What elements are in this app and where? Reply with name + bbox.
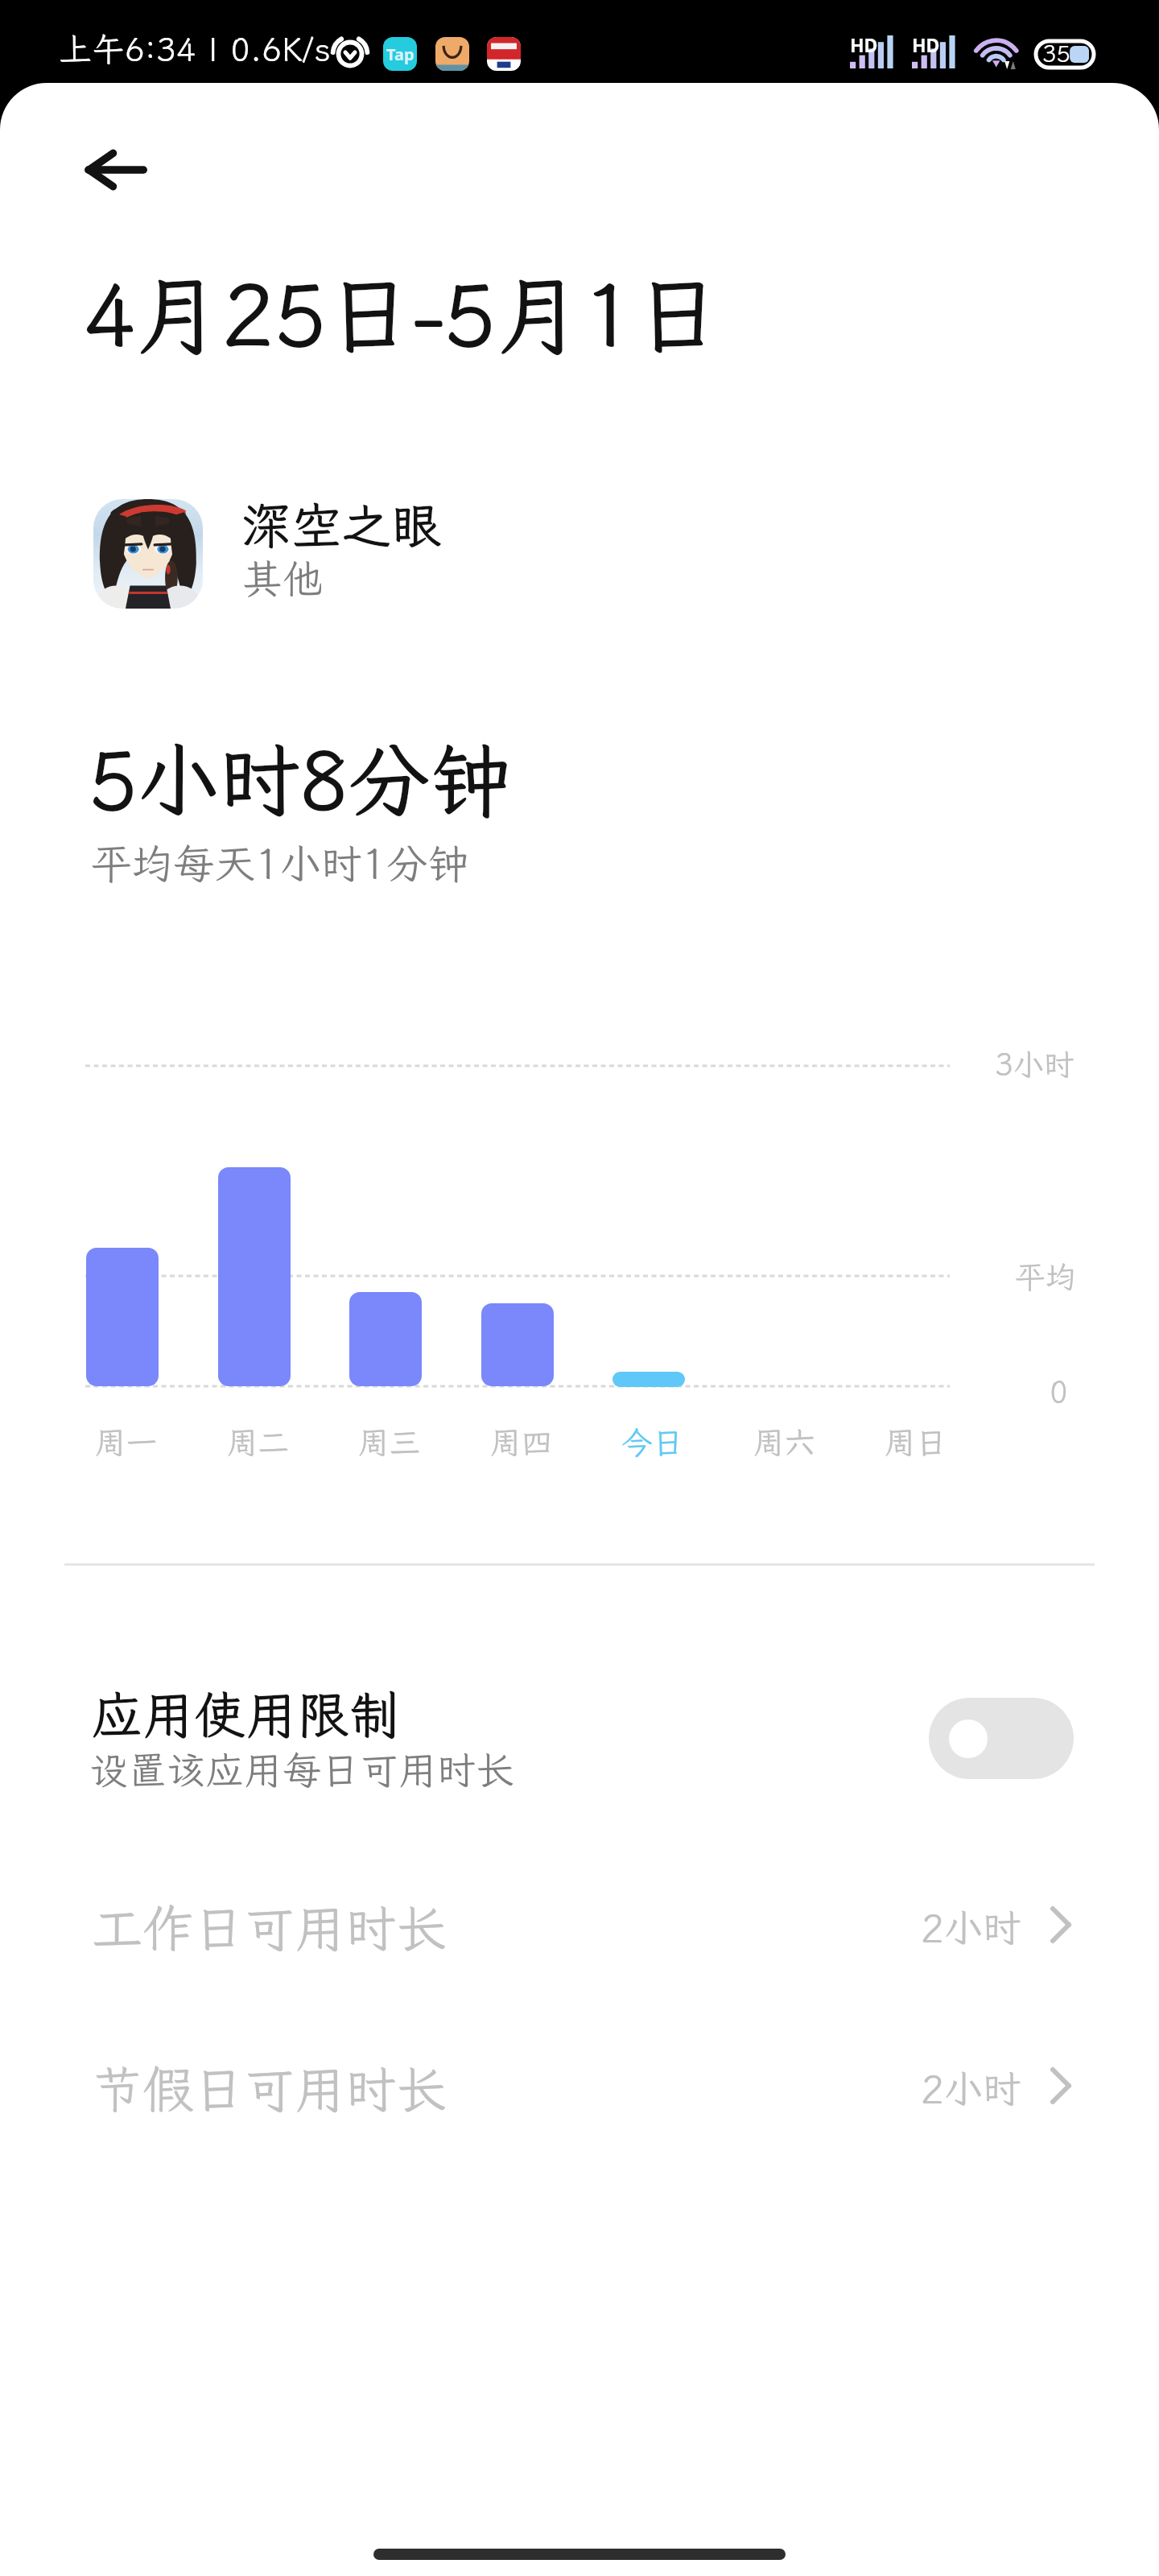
staticText: 设置该应用每日可用时长 xyxy=(89,1744,515,1794)
staticText: 0 xyxy=(1050,1372,1068,1412)
staticText: 周三 xyxy=(357,1422,421,1463)
staticText: 5小时8分钟 xyxy=(89,725,512,832)
button[interactable]: 应用使用限制 xyxy=(0,1658,1159,1835)
staticText: 上午6:34 | 0.6K/s xyxy=(59,27,331,71)
staticText: 35 xyxy=(1042,38,1070,68)
staticText: 今日 xyxy=(621,1422,684,1463)
staticText: 深空之眼 xyxy=(241,492,442,558)
button[interactable]: 工作日可用时长 xyxy=(0,1856,1159,2001)
button[interactable]: 应用使用限制 xyxy=(929,1698,1074,1779)
staticText: 平均 xyxy=(1015,1257,1077,1297)
staticText: 工作日可用时长 xyxy=(92,1894,447,1961)
staticText: 3小时 xyxy=(995,1044,1074,1084)
staticText: 周一 xyxy=(94,1422,158,1463)
staticText: 节假日可用时长 xyxy=(92,2055,447,2122)
staticText: 周六 xyxy=(753,1422,816,1463)
staticText: 平均每天1小时1分钟 xyxy=(91,836,469,890)
button[interactable]: 节假日可用时长 xyxy=(0,2017,1159,2162)
staticText: 应用使用限制 xyxy=(91,1680,400,1748)
staticText: 周四 xyxy=(489,1422,553,1463)
staticText: HD xyxy=(850,32,878,57)
staticText: 周日 xyxy=(884,1422,947,1463)
staticText: 4月25日-5月1日 xyxy=(83,256,722,370)
staticText: 周二 xyxy=(226,1422,290,1463)
staticText: 2小时 xyxy=(921,2062,1021,2113)
staticText: Tap xyxy=(386,43,415,65)
staticText: 2小时 xyxy=(921,1901,1021,1952)
button[interactable]: 深空之眼 xyxy=(0,483,1159,623)
button[interactable]: Back xyxy=(68,122,164,218)
staticText: 其他 xyxy=(242,551,323,605)
staticText: HD xyxy=(912,32,940,57)
